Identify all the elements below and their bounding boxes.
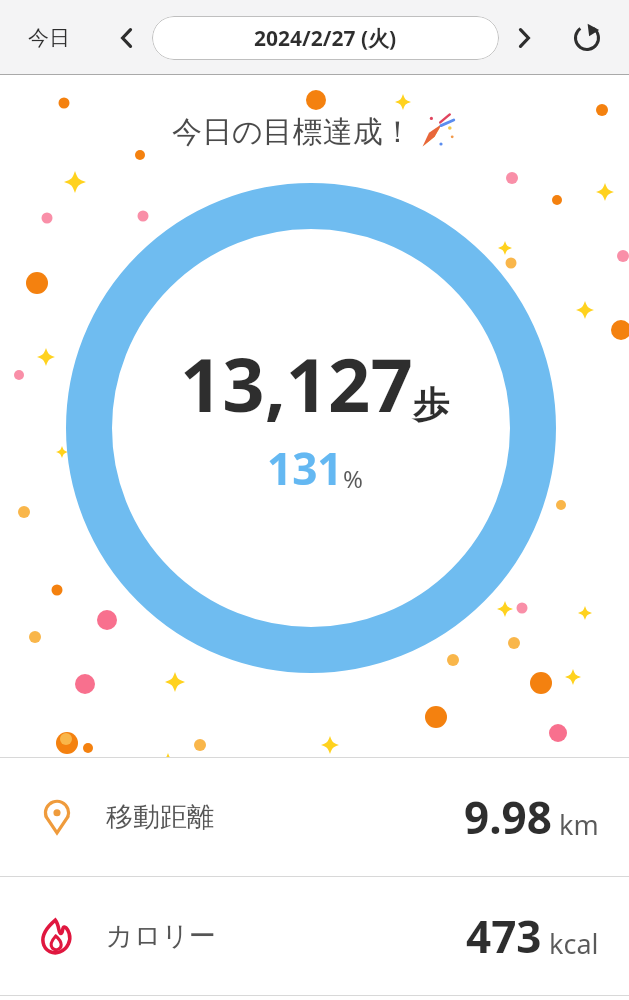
- staticText: 131: [267, 438, 343, 498]
- staticText: 今日: [28, 25, 70, 51]
- button[interactable]: 移動距離: [0, 758, 629, 876]
- staticText: 9.98: [464, 787, 552, 847]
- staticText: 13,127: [180, 333, 413, 434]
- staticText: kcal: [549, 925, 599, 962]
- staticText: %: [343, 462, 363, 495]
- staticText: 473: [466, 906, 542, 966]
- button[interactable]: 前の日: [110, 21, 144, 55]
- button[interactable]: 2024/2/27 (火): [152, 16, 499, 60]
- staticText: 2024/2/27 (火): [254, 24, 397, 53]
- staticText: km: [559, 806, 599, 843]
- staticText: 移動距離: [106, 800, 214, 834]
- button[interactable]: 今日: [22, 19, 76, 57]
- button[interactable]: 次の日: [507, 21, 541, 55]
- staticText: 今日の目標達成！: [172, 113, 413, 151]
- staticText: カロリー: [106, 919, 216, 953]
- button[interactable]: 更新: [567, 18, 607, 58]
- staticText: 歩: [413, 382, 449, 427]
- button[interactable]: カロリー: [0, 877, 629, 995]
